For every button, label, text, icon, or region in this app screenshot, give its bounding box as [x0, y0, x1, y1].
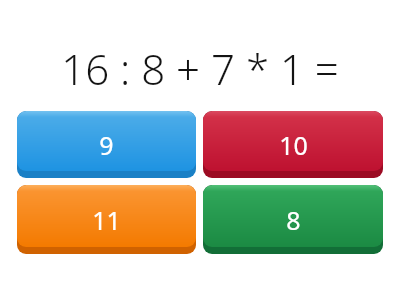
button[interactable]: 10: [203, 111, 383, 178]
button[interactable]: 11: [17, 185, 196, 254]
staticText: 8: [286, 203, 301, 237]
staticText: 11: [92, 203, 121, 237]
staticText: 10: [279, 128, 308, 162]
button[interactable]: 9: [17, 111, 196, 178]
button[interactable]: 8: [203, 185, 383, 254]
staticText: 16 : 8 + 7 * 1 =: [61, 40, 339, 97]
staticText: 9: [99, 128, 114, 162]
